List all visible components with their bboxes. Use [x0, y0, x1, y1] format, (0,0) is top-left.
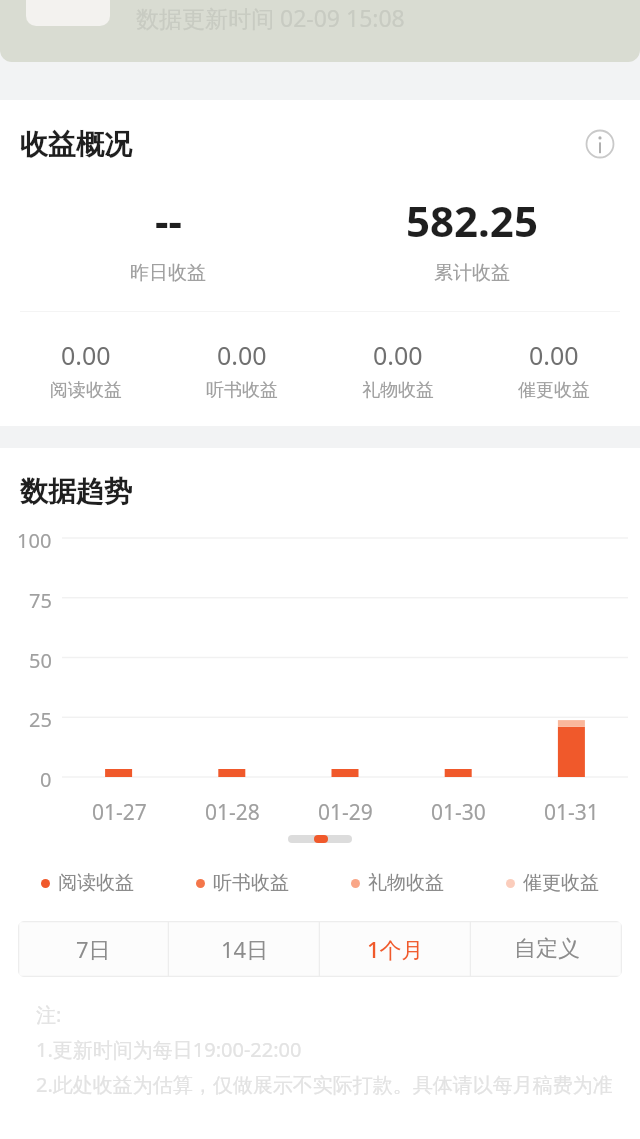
- staticText: 0.00: [61, 338, 111, 372]
- button[interactable]: 说明: [580, 124, 620, 164]
- staticText: 14日: [221, 934, 269, 964]
- staticText: 礼物收益: [368, 871, 444, 895]
- staticText: 数据趋势: [20, 474, 132, 509]
- staticText: 75: [29, 587, 52, 609]
- staticText: 2.此处收益为估算，仅做展示不实际打款。具体请以每月稿费为准: [36, 1071, 613, 1098]
- staticText: 昨日收益: [130, 261, 206, 285]
- button[interactable]: 阅读收益: [10, 871, 165, 895]
- button[interactable]: 催更收益: [475, 871, 630, 895]
- staticText: 1.更新时间为每日19:00-22:00: [36, 1036, 302, 1063]
- staticText: 催更收益: [518, 379, 590, 402]
- staticText: 注:: [36, 1001, 62, 1028]
- staticText: 01-31: [544, 798, 599, 827]
- staticText: 阅读收益: [58, 871, 134, 895]
- staticText: 听书收益: [206, 379, 278, 402]
- staticText: 0.00: [373, 338, 423, 372]
- staticText: 582.25: [406, 192, 538, 249]
- staticText: 01-28: [205, 798, 260, 827]
- button[interactable]: 听书收益: [165, 871, 320, 895]
- button[interactable]: 1个月: [320, 921, 471, 977]
- staticText: 100: [17, 527, 52, 549]
- staticText: 25: [29, 706, 52, 728]
- staticText: 50: [29, 647, 52, 669]
- button[interactable]: 7日: [18, 921, 169, 977]
- staticText: 累计收益: [434, 261, 510, 285]
- staticText: 阅读收益: [50, 379, 122, 402]
- staticText: 01-30: [431, 798, 486, 827]
- staticText: 7日: [76, 934, 111, 964]
- button[interactable]: 礼物收益: [320, 871, 475, 895]
- staticText: 0.00: [217, 338, 267, 372]
- button[interactable]: 自定义: [471, 921, 622, 977]
- button[interactable]: 14日: [169, 921, 320, 977]
- staticText: --: [155, 192, 182, 249]
- staticText: 催更收益: [523, 871, 599, 895]
- staticText: 听书收益: [213, 871, 289, 895]
- staticText: 礼物收益: [362, 379, 434, 402]
- staticText: 0: [40, 766, 52, 788]
- staticText: 1个月: [367, 934, 424, 964]
- staticText: 收益概况: [20, 127, 132, 162]
- staticText: 数据更新时间 02-09 15:08: [136, 2, 405, 33]
- staticText: 01-29: [318, 798, 373, 827]
- staticText: 自定义: [514, 935, 580, 963]
- staticText: 01-27: [92, 798, 147, 827]
- staticText: 0.00: [529, 338, 579, 372]
